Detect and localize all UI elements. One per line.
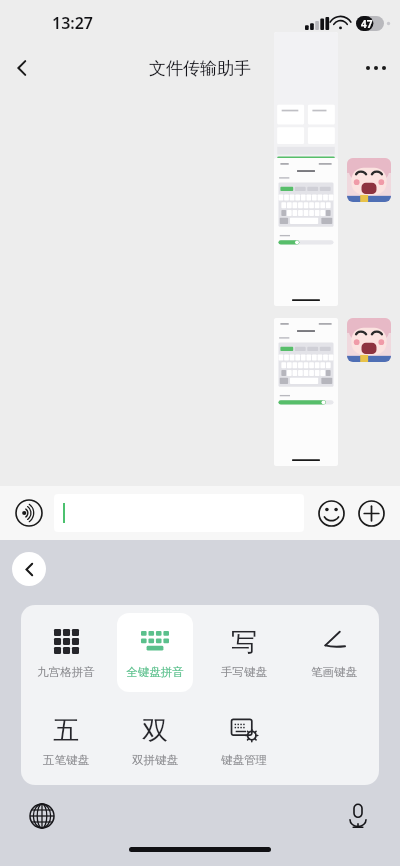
button[interactable]: 写	[206, 613, 282, 692]
button[interactable]: More	[352, 46, 400, 90]
staticText: 13:27	[52, 12, 94, 34]
staticText: 五	[53, 714, 79, 744]
button[interactable]: Emoji	[314, 496, 348, 530]
button[interactable]: 笔画键盘	[296, 613, 372, 692]
button[interactable]: Back to keyboard	[12, 552, 46, 586]
button[interactable]: 九宫格拼音	[28, 613, 104, 692]
staticText: 文件传输助手	[149, 58, 251, 79]
staticText: 双拼键盘	[132, 753, 178, 767]
button[interactable]	[274, 32, 338, 172]
button[interactable]	[274, 318, 338, 466]
button[interactable]: 全键盘拼音	[117, 613, 193, 692]
staticText: 写	[231, 626, 257, 656]
button[interactable]: Voice input	[12, 496, 46, 530]
button[interactable]: 双	[117, 701, 193, 780]
staticText: 双	[142, 714, 168, 744]
staticText: 键盘管理	[221, 753, 267, 767]
button[interactable]	[347, 318, 391, 362]
button[interactable]	[54, 494, 304, 532]
button[interactable]: 键盘管理	[206, 701, 282, 780]
staticText: 九宫格拼音	[37, 665, 95, 679]
button[interactable]: Switch language	[24, 798, 60, 834]
button[interactable]: 五	[28, 701, 104, 780]
staticText: 笔画键盘	[311, 665, 357, 679]
button[interactable]: Voice	[340, 798, 376, 834]
staticText: 全键盘拼音	[126, 665, 184, 679]
staticText: 五笔键盘	[43, 753, 89, 767]
staticText: 手写键盘	[221, 665, 267, 679]
button[interactable]: Back	[0, 46, 44, 90]
button[interactable]: More options	[354, 496, 388, 530]
button[interactable]	[274, 158, 338, 306]
staticText: 47	[361, 17, 373, 31]
button[interactable]	[347, 158, 391, 202]
